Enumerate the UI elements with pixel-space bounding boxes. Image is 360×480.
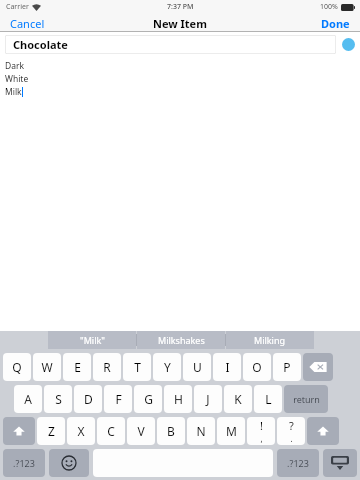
button[interactable]: Y bbox=[153, 353, 181, 381]
staticText: Z bbox=[48, 423, 55, 439]
staticText: Dark bbox=[5, 60, 25, 72]
button[interactable]: R bbox=[93, 353, 121, 381]
button[interactable]: N bbox=[187, 417, 215, 445]
staticText: Milking bbox=[254, 334, 286, 346]
staticText: B bbox=[167, 423, 175, 439]
button[interactable]: "Milk" bbox=[48, 331, 136, 349]
staticText: Y bbox=[164, 359, 171, 375]
staticText: G bbox=[144, 391, 153, 407]
button[interactable]: Shift bbox=[307, 417, 339, 445]
staticText: 100% bbox=[320, 2, 338, 12]
button[interactable]: J bbox=[194, 385, 222, 413]
button[interactable]: Chocolate bbox=[5, 35, 336, 54]
staticText: Milkshakes bbox=[158, 334, 205, 346]
button[interactable]: Colour swatch bbox=[342, 38, 355, 51]
button[interactable]: Hide keyboard bbox=[323, 449, 357, 477]
button[interactable]: Cancel bbox=[10, 16, 45, 31]
staticText: S bbox=[55, 391, 62, 407]
button[interactable]: Z bbox=[37, 417, 65, 445]
staticText: R bbox=[103, 359, 111, 375]
staticText: K bbox=[234, 391, 242, 407]
staticText: .?123 bbox=[13, 457, 35, 469]
button[interactable]: V bbox=[127, 417, 155, 445]
button[interactable]: H bbox=[164, 385, 192, 413]
button[interactable]: B bbox=[157, 417, 185, 445]
button[interactable]: Milking bbox=[226, 331, 314, 349]
button[interactable]: A bbox=[14, 385, 42, 413]
staticText: ? bbox=[289, 418, 294, 433]
staticText: E bbox=[74, 359, 81, 375]
staticText: Q bbox=[12, 359, 22, 375]
button[interactable]: E bbox=[63, 353, 91, 381]
staticText: . bbox=[290, 433, 293, 444]
staticText: P bbox=[283, 359, 291, 375]
button[interactable]: Dark bbox=[5, 60, 360, 98]
staticText: W bbox=[41, 359, 53, 375]
button[interactable]: S bbox=[44, 385, 72, 413]
button[interactable]: return bbox=[284, 385, 328, 413]
staticText: I bbox=[225, 359, 230, 375]
staticText: F bbox=[115, 391, 122, 407]
button[interactable]: O bbox=[243, 353, 271, 381]
staticText: return bbox=[293, 393, 320, 405]
staticText: M bbox=[226, 423, 237, 439]
button[interactable]: ? bbox=[277, 417, 305, 445]
staticText: Milk bbox=[5, 86, 22, 98]
button[interactable]: T bbox=[123, 353, 151, 381]
button[interactable]: G bbox=[134, 385, 162, 413]
staticText: , bbox=[260, 433, 263, 444]
staticText: H bbox=[174, 391, 183, 407]
staticText: 7:37 PM bbox=[167, 2, 194, 12]
button[interactable]: ! bbox=[247, 417, 275, 445]
button[interactable]: X bbox=[67, 417, 95, 445]
button[interactable]: L bbox=[254, 385, 282, 413]
staticText: L bbox=[265, 391, 272, 407]
staticText: New Item bbox=[153, 16, 207, 31]
button[interactable]: Shift bbox=[3, 417, 35, 445]
staticText: .?123 bbox=[287, 457, 309, 469]
staticText: Chocolate bbox=[13, 37, 68, 52]
button[interactable]: U bbox=[183, 353, 211, 381]
staticText: T bbox=[134, 359, 141, 375]
button[interactable]: K bbox=[224, 385, 252, 413]
button[interactable]: .?123 bbox=[3, 449, 45, 477]
staticText: Cancel bbox=[10, 16, 45, 31]
staticText: White bbox=[5, 73, 29, 85]
button[interactable]: Q bbox=[3, 353, 31, 381]
button[interactable]: I bbox=[213, 353, 241, 381]
staticText: ! bbox=[260, 418, 263, 433]
staticText: O bbox=[252, 359, 262, 375]
staticText: C bbox=[107, 423, 115, 439]
staticText: U bbox=[193, 359, 202, 375]
button[interactable]: W bbox=[33, 353, 61, 381]
button[interactable]: P bbox=[273, 353, 301, 381]
button[interactable]: Milkshakes bbox=[137, 331, 225, 349]
staticText: D bbox=[84, 391, 93, 407]
button[interactable]: M bbox=[217, 417, 245, 445]
button[interactable]: F bbox=[104, 385, 132, 413]
staticText: Carrier bbox=[6, 2, 29, 12]
staticText: Done bbox=[321, 16, 350, 31]
button[interactable]: C bbox=[97, 417, 125, 445]
staticText: "Milk" bbox=[80, 334, 105, 346]
staticText: A bbox=[24, 391, 32, 407]
button[interactable]: .?123 bbox=[277, 449, 319, 477]
staticText: V bbox=[137, 423, 145, 439]
button[interactable]: D bbox=[74, 385, 102, 413]
staticText: J bbox=[206, 391, 210, 407]
button[interactable]: Done bbox=[321, 16, 350, 31]
button[interactable]: Emoji bbox=[49, 449, 89, 477]
button[interactable]: Backspace bbox=[303, 353, 333, 381]
staticText: X bbox=[77, 423, 85, 439]
staticText: N bbox=[196, 423, 206, 439]
